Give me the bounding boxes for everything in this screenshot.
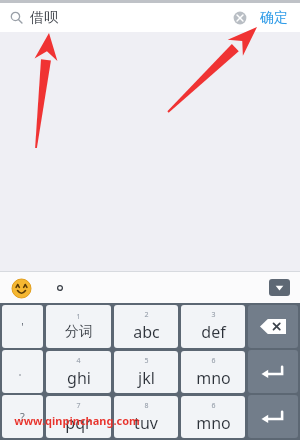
staticText: abc	[133, 321, 160, 343]
button[interactable]: Clear text	[230, 8, 250, 28]
staticText: jkl	[138, 367, 155, 389]
staticText: 借呗	[30, 9, 58, 27]
button[interactable]: 8	[114, 396, 178, 438]
button[interactable]: Enter	[248, 395, 298, 438]
staticText: 1	[76, 312, 81, 322]
staticText: 4	[76, 356, 81, 366]
button[interactable]: 3	[181, 305, 245, 348]
staticText: mno	[196, 412, 231, 434]
button[interactable]: 确定	[258, 7, 290, 29]
staticText: tuv	[134, 412, 158, 434]
staticText: 。	[18, 366, 27, 377]
staticText: 分词	[65, 323, 93, 341]
button[interactable]: Enter	[248, 350, 298, 393]
staticText: 6	[211, 356, 216, 366]
button[interactable]: 6	[181, 396, 245, 438]
button[interactable]: 6	[181, 351, 245, 393]
staticText: 确定	[260, 9, 288, 27]
staticText: www.qinpinchang.com	[14, 413, 140, 428]
button[interactable]: '	[2, 305, 43, 348]
staticText: ghi	[67, 367, 91, 389]
staticText: 8	[144, 401, 149, 411]
staticText: pqr	[65, 412, 92, 434]
staticText: 3	[211, 310, 216, 320]
staticText: ?	[20, 409, 25, 424]
staticText: def	[201, 321, 226, 343]
button[interactable]: Emoji	[10, 277, 32, 299]
button[interactable]: 1	[46, 305, 111, 348]
button[interactable]: 7	[46, 396, 111, 438]
button[interactable]: 4	[46, 351, 111, 393]
staticText: 2	[144, 310, 149, 320]
button[interactable]: Delete	[248, 305, 298, 348]
button[interactable]: ?	[2, 395, 43, 438]
staticText: '	[21, 319, 24, 334]
staticText: 7	[76, 401, 81, 411]
button[interactable]: Hide keyboard	[269, 279, 290, 296]
staticText: 5	[144, 356, 149, 366]
staticText: mno	[196, 367, 231, 389]
button[interactable]: 。	[2, 350, 43, 393]
staticText: 6	[211, 401, 216, 411]
button[interactable]: 5	[114, 351, 178, 393]
button[interactable]: 2	[114, 305, 178, 348]
